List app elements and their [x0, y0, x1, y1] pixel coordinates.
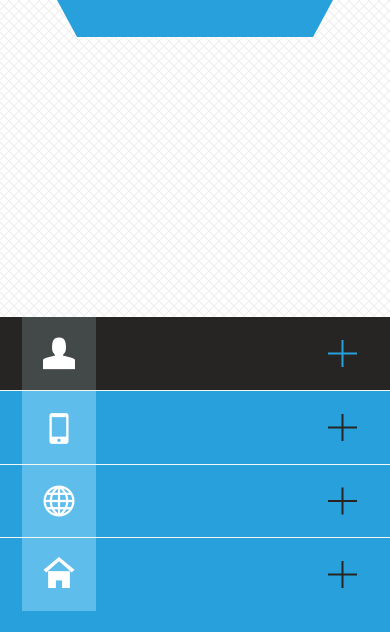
button[interactable]: Add website [0, 465, 390, 537]
button[interactable]: Add contact [0, 317, 390, 390]
button[interactable]: Add phone [0, 391, 390, 464]
button[interactable]: Add address [0, 538, 390, 611]
